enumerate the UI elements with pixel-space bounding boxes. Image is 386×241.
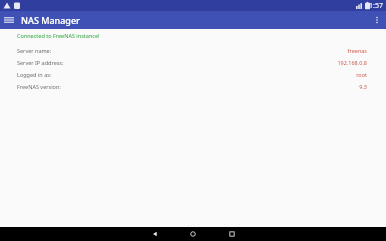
staticText: 1:57 (369, 1, 383, 11)
button[interactable]: Home (185, 227, 201, 241)
button[interactable]: Open navigation drawer (0, 11, 18, 29)
staticText: 9.3 (359, 83, 367, 90)
staticText: FreeNAS version: (17, 83, 61, 90)
button[interactable]: Recent apps (224, 227, 240, 241)
button[interactable]: More options (368, 11, 386, 29)
button[interactable]: FreeNAS version: (0, 80, 386, 92)
button[interactable]: Logged in as: (0, 68, 386, 80)
staticText: Server name: (17, 47, 52, 54)
button[interactable]: Server name: (0, 44, 386, 56)
staticText: 192.168.0.8 (337, 59, 367, 66)
button[interactable]: Server IP address: (0, 56, 386, 68)
staticText: freenas (347, 47, 367, 54)
staticText: root (356, 71, 367, 78)
staticText: NAS Manager (21, 14, 80, 26)
staticText: Logged in as: (17, 71, 52, 78)
staticText: Server IP address: (17, 59, 64, 66)
button[interactable]: Back (147, 227, 163, 241)
staticText: Connected to FreeNAS instance! (17, 32, 100, 39)
